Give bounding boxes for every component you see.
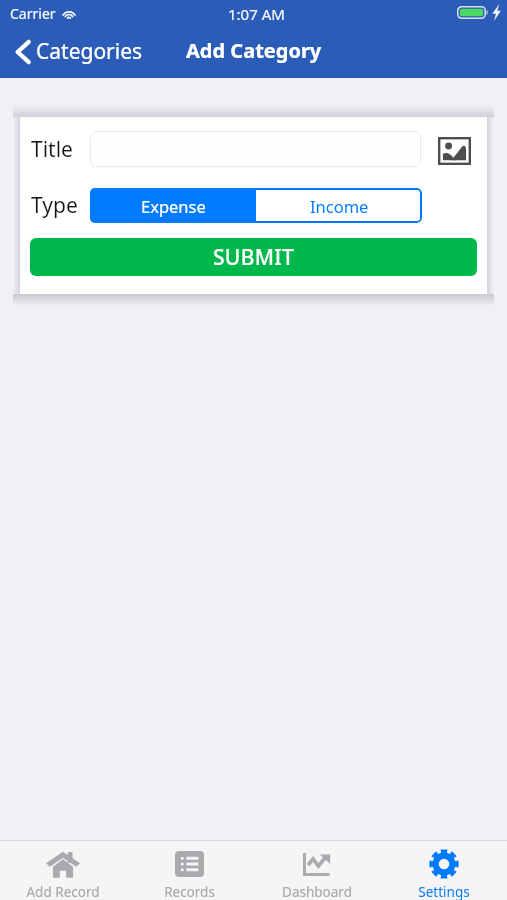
staticText: Expense [141,195,206,217]
staticText: 1:07 AM [228,4,285,24]
staticText: Type [31,191,90,220]
button[interactable]: Income [256,188,422,223]
staticText: Categories [36,37,143,66]
staticText: Records [164,883,215,900]
staticText: Settings [418,883,470,900]
button[interactable]: Dashboard [253,841,380,900]
staticText: Add Record [26,883,100,900]
staticText: Carrier [10,4,56,23]
button[interactable]: Records [126,841,253,900]
staticText: Add Category [186,37,322,64]
button[interactable]: Pick image [436,133,472,165]
button[interactable] [90,131,421,167]
staticText: Title [31,135,90,164]
button[interactable]: Expense [90,188,256,223]
staticText: Income [310,195,369,217]
staticText: SUBMIT [213,243,295,272]
button[interactable]: SUBMIT [30,238,477,276]
button[interactable]: Settings [380,841,507,900]
button[interactable]: Add Record [0,841,126,900]
staticText: Dashboard [282,883,352,900]
button[interactable]: Back to Categories [0,33,149,74]
